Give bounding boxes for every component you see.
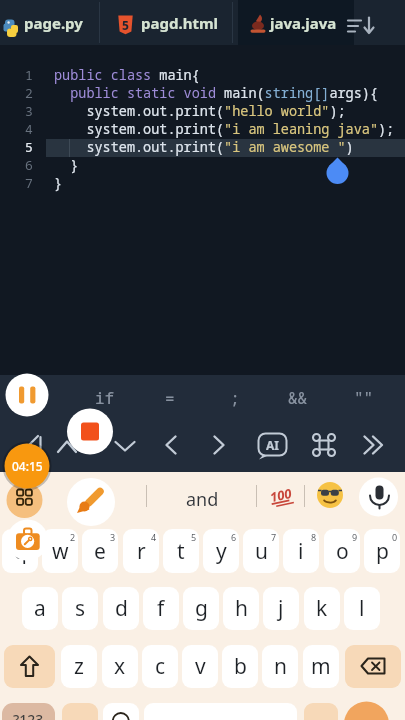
- staticText: j: [278, 594, 284, 623]
- button[interactable]: 100: [260, 480, 302, 510]
- staticText: e: [94, 537, 106, 566]
- staticText: 100: [268, 484, 294, 506]
- button[interactable]: =: [145, 383, 195, 413]
- staticText: m: [311, 652, 331, 681]
- staticText: 1: [30, 531, 36, 542]
- button[interactable]: page.py: [24, 0, 100, 45]
- staticText: y: [216, 537, 227, 566]
- button[interactable]: v: [182, 645, 218, 688]
- button[interactable]: [151, 428, 191, 462]
- button[interactable]: [345, 645, 401, 688]
- staticText: page.py: [24, 13, 83, 33]
- button[interactable]: [4, 645, 55, 688]
- button[interactable]: n: [262, 645, 298, 688]
- staticText: b: [234, 652, 247, 681]
- button[interactable]: j: [263, 587, 299, 630]
- button[interactable]: [238, 0, 354, 45]
- button[interactable]: "": [339, 383, 389, 413]
- staticText: q: [14, 537, 27, 566]
- staticText: 4: [25, 120, 33, 138]
- staticText: ;: [230, 387, 240, 409]
- staticText: c: [155, 652, 166, 681]
- button[interactable]: [304, 428, 344, 462]
- staticText: 4: [151, 531, 157, 542]
- staticText: l: [359, 594, 365, 623]
- staticText: p: [376, 537, 389, 566]
- staticText: system.out.print("hello world");: [54, 102, 346, 120]
- staticText: system.out.print("i am leaning java");: [54, 120, 395, 138]
- button[interactable]: r: [123, 529, 159, 573]
- button[interactable]: and: [160, 483, 244, 515]
- button[interactable]: pagd.html: [141, 0, 231, 45]
- staticText: 8: [311, 531, 317, 542]
- button[interactable]: u: [243, 529, 279, 573]
- button[interactable]: [103, 703, 139, 720]
- staticText: z: [74, 652, 84, 681]
- staticText: 2: [25, 84, 33, 102]
- staticText: 1: [25, 66, 33, 84]
- button[interactable]: [199, 428, 239, 462]
- button[interactable]: a: [22, 587, 58, 630]
- staticText: system.out.print("i am awesome "): [54, 138, 354, 156]
- button[interactable]: o: [324, 529, 360, 573]
- staticText: a: [34, 594, 46, 623]
- staticText: u: [255, 537, 268, 566]
- button[interactable]: [62, 703, 98, 720]
- staticText: 0: [392, 531, 398, 542]
- button[interactable]: x: [102, 645, 138, 688]
- button[interactable]: h: [223, 587, 259, 630]
- button[interactable]: ?123: [2, 703, 55, 720]
- staticText: 9: [352, 531, 358, 542]
- button[interactable]: w: [42, 529, 78, 573]
- button[interactable]: p: [364, 529, 400, 573]
- staticText: 04:15: [12, 458, 43, 474]
- staticText: 7: [271, 531, 277, 542]
- button[interactable]: e: [82, 529, 118, 573]
- staticText: g: [195, 594, 208, 623]
- staticText: &&: [288, 387, 308, 409]
- button[interactable]: ;: [210, 383, 260, 413]
- staticText: ?123: [13, 710, 44, 720]
- button[interactable]: g: [183, 587, 219, 630]
- staticText: 3: [110, 531, 116, 542]
- staticText: if: [95, 387, 115, 409]
- staticText: r: [137, 537, 146, 566]
- button[interactable]: [252, 428, 292, 462]
- button[interactable]: java.java: [270, 0, 350, 45]
- button[interactable]: if: [80, 383, 130, 413]
- button[interactable]: s: [62, 587, 98, 630]
- button[interactable]: &&: [273, 383, 323, 413]
- button[interactable]: b: [222, 645, 258, 688]
- staticText: 3: [25, 102, 33, 120]
- staticText: 5: [25, 138, 33, 156]
- staticText: d: [115, 594, 128, 623]
- button[interactable]: f: [143, 587, 179, 630]
- button[interactable]: m: [303, 645, 339, 688]
- staticText: public static void main(string[]args){: [54, 84, 378, 102]
- button[interactable]: [304, 703, 338, 720]
- staticText: s: [75, 594, 86, 623]
- button[interactable]: i: [283, 529, 319, 573]
- staticText: }: [54, 174, 63, 192]
- staticText: 7: [25, 174, 33, 192]
- button[interactable]: l: [344, 587, 380, 630]
- staticText: 6: [231, 531, 237, 542]
- button[interactable]: z: [61, 645, 97, 688]
- staticText: }: [54, 156, 79, 174]
- button[interactable]: q: [2, 529, 38, 573]
- button[interactable]: t: [163, 529, 199, 573]
- staticText: "": [354, 387, 374, 409]
- button[interactable]: d: [103, 587, 139, 630]
- button[interactable]: y: [203, 529, 239, 573]
- button[interactable]: [355, 428, 395, 462]
- button[interactable]: k: [304, 587, 340, 630]
- button[interactable]: [344, 0, 389, 45]
- button[interactable]: [105, 428, 145, 462]
- staticText: f: [157, 594, 165, 623]
- staticText: k: [316, 594, 328, 623]
- button[interactable]: 04:15: [3, 450, 51, 482]
- button[interactable]: c: [142, 645, 178, 688]
- staticText: i: [298, 537, 304, 566]
- staticText: and: [186, 487, 219, 512]
